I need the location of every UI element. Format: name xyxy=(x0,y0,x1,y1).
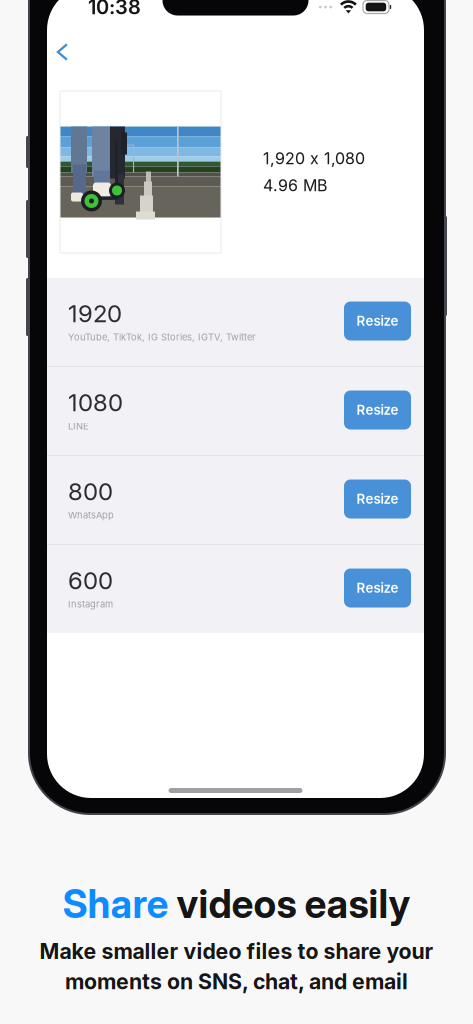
staticText: LINE xyxy=(68,421,89,432)
staticText: Resize xyxy=(356,402,398,418)
staticText: videos easily xyxy=(176,881,410,927)
staticText: Make smaller video files to share your xyxy=(39,939,433,964)
staticText: YouTube, TikTok, IG Stories, IGTV, Twitt… xyxy=(68,332,256,343)
staticText: Share xyxy=(62,881,176,927)
button[interactable]: Resize xyxy=(344,479,411,518)
staticText: Resize xyxy=(356,313,398,329)
button[interactable]: Resize xyxy=(344,568,411,607)
staticText: 800 xyxy=(68,477,113,506)
staticText: 600 xyxy=(68,566,113,595)
staticText: 1920 xyxy=(68,299,122,328)
button[interactable]: Back xyxy=(48,34,76,68)
button[interactable]: Resize xyxy=(344,301,411,340)
staticText: 1,920 x 1,080 xyxy=(263,149,365,168)
button[interactable]: 800 xyxy=(47,456,424,544)
staticText: Instagram xyxy=(68,599,113,610)
staticText: Resize xyxy=(356,491,398,507)
staticText: Resize xyxy=(356,580,398,596)
staticText: 10:38 xyxy=(88,0,141,19)
button[interactable]: 600 xyxy=(47,545,424,633)
staticText: 1080 xyxy=(68,388,123,417)
button[interactable]: Resize xyxy=(344,390,411,429)
staticText: 4.96 MB xyxy=(263,176,327,195)
button[interactable]: 1080 xyxy=(47,367,424,455)
staticText: moments on SNS, chat, and email xyxy=(65,969,408,994)
button[interactable]: 1920 xyxy=(47,278,424,366)
staticText: WhatsApp xyxy=(68,510,114,521)
